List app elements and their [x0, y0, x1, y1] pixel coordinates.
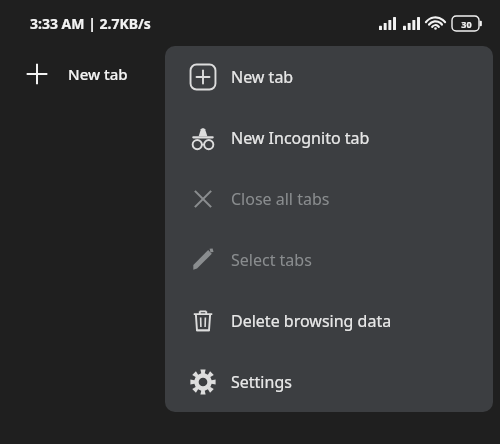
staticText: New tab	[68, 64, 128, 84]
button[interactable]: New tab	[165, 46, 493, 107]
button[interactable]: Select tabs	[165, 229, 493, 290]
staticText: 3:33 AM | 2.7KB/s	[30, 14, 151, 33]
button[interactable]: Close all tabs	[165, 168, 493, 229]
button[interactable]: New tab	[10, 53, 155, 95]
button[interactable]: Settings	[165, 351, 493, 412]
staticText: Delete browsing data	[231, 310, 392, 332]
button[interactable]: New Incognito tab	[165, 107, 493, 168]
button[interactable]: Delete browsing data	[165, 290, 493, 351]
staticText: New tab	[231, 66, 294, 88]
staticText: Select tabs	[231, 249, 312, 271]
staticText: 30	[461, 18, 472, 30]
staticText: New Incognito tab	[231, 127, 370, 149]
staticText: Settings	[231, 371, 292, 393]
staticText: Close all tabs	[231, 188, 330, 210]
